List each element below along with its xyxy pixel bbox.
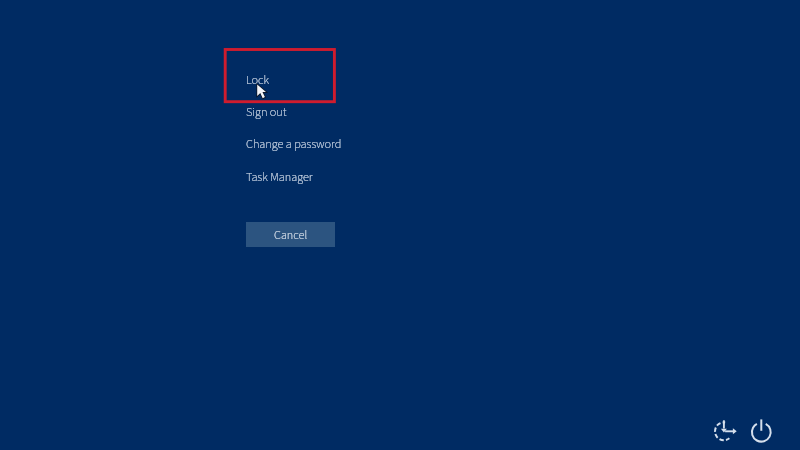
button[interactable]: Task Manager — [246, 166, 346, 186]
button[interactable]: Change a password — [246, 133, 346, 153]
button[interactable]: Power — [747, 418, 775, 446]
staticText: Lock — [246, 71, 270, 88]
button[interactable]: Sign out options — [710, 417, 738, 445]
staticText: Task Manager — [246, 168, 313, 185]
staticText: Sign out — [246, 103, 287, 120]
button[interactable]: Cancel — [246, 222, 335, 247]
staticText: Change a password — [246, 135, 342, 152]
button[interactable]: Sign out — [246, 101, 346, 121]
button[interactable]: Lock — [246, 69, 346, 89]
staticText: Cancel — [274, 226, 308, 243]
